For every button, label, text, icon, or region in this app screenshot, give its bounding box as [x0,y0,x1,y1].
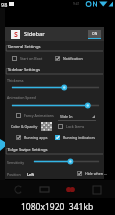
staticText: S [14,30,18,39]
staticText: General Settings [8,44,41,50]
button[interactable]: Slider [9,84,102,91]
staticText: Thickness [7,78,24,83]
button[interactable]: Back [11,182,26,197]
staticText: 9:41 [73,2,80,6]
button[interactable]: Notification [53,54,85,63]
staticText: Slide In [60,114,73,119]
button[interactable]: Slide In [58,112,96,122]
button[interactable]: Running indicators [53,133,97,142]
button[interactable]: Home [37,182,52,197]
button[interactable]: Fancy Animations [14,111,56,120]
staticText: Edge Swipe Settings [8,147,48,153]
staticText: Start on Boot [20,56,43,61]
button[interactable]: Apps [89,182,104,197]
staticText: 1080x1920 341kb [21,201,94,213]
staticText: Sidebar [24,30,45,38]
button[interactable]: Pick colour [41,122,52,131]
button[interactable]: Slider [9,102,102,109]
staticText: 98 [1,1,8,8]
staticText: Color & Opacity [11,124,38,129]
staticText: Position [7,172,21,177]
staticText: Notification [63,56,83,61]
button[interactable]: Lock Items [56,122,87,131]
button[interactable]: Start on Boot [10,54,45,63]
button[interactable]: Slider [31,158,102,165]
staticText: Lock Items [66,124,85,129]
button[interactable]: Running apps [14,133,50,142]
staticText: Sidebar Settings [8,67,40,73]
staticText: Hide when ... [85,171,107,176]
button[interactable]: S [5,27,104,41]
staticText: Running apps [24,135,48,140]
staticText: Animation Speed [7,95,36,100]
staticText: Sensitivity [7,160,24,165]
button[interactable]: Hide when ... [75,169,109,178]
button[interactable]: ON [88,30,101,39]
button[interactable]: Recents [63,182,78,197]
staticText: Left [27,172,35,177]
staticText: Running indicators [63,135,95,140]
staticText: Fancy Animations [24,113,54,118]
staticText: ON [92,31,98,36]
